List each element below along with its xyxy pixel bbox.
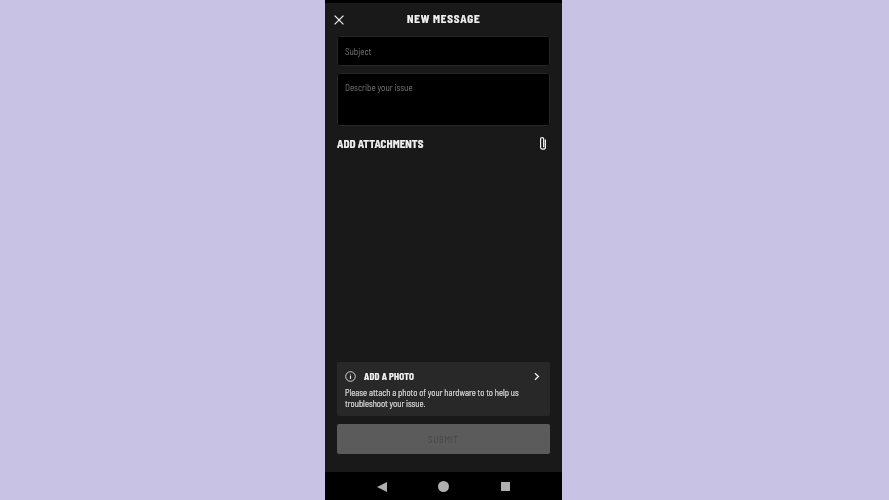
- staticText: SUBMIT: [428, 434, 459, 445]
- staticText: ADD ATTACHMENTS: [337, 137, 424, 150]
- button[interactable]: ADD A PHOTO: [337, 362, 550, 416]
- staticText: Describe your issue: [345, 82, 413, 93]
- button[interactable]: Recents: [495, 476, 516, 497]
- button[interactable]: Back: [371, 476, 392, 497]
- button[interactable]: Close: [328, 9, 350, 31]
- button[interactable]: ADD ATTACHMENTS: [337, 135, 550, 151]
- button[interactable]: Subject: [337, 36, 550, 66]
- button[interactable]: Describe your issue: [337, 73, 550, 126]
- staticText: Please attach a photo of your hardware t…: [345, 387, 542, 409]
- button[interactable]: Home: [433, 476, 454, 497]
- staticText: ADD A PHOTO: [364, 371, 415, 382]
- staticText: Subject: [345, 46, 372, 57]
- staticText: NEW MESSAGE: [407, 12, 481, 25]
